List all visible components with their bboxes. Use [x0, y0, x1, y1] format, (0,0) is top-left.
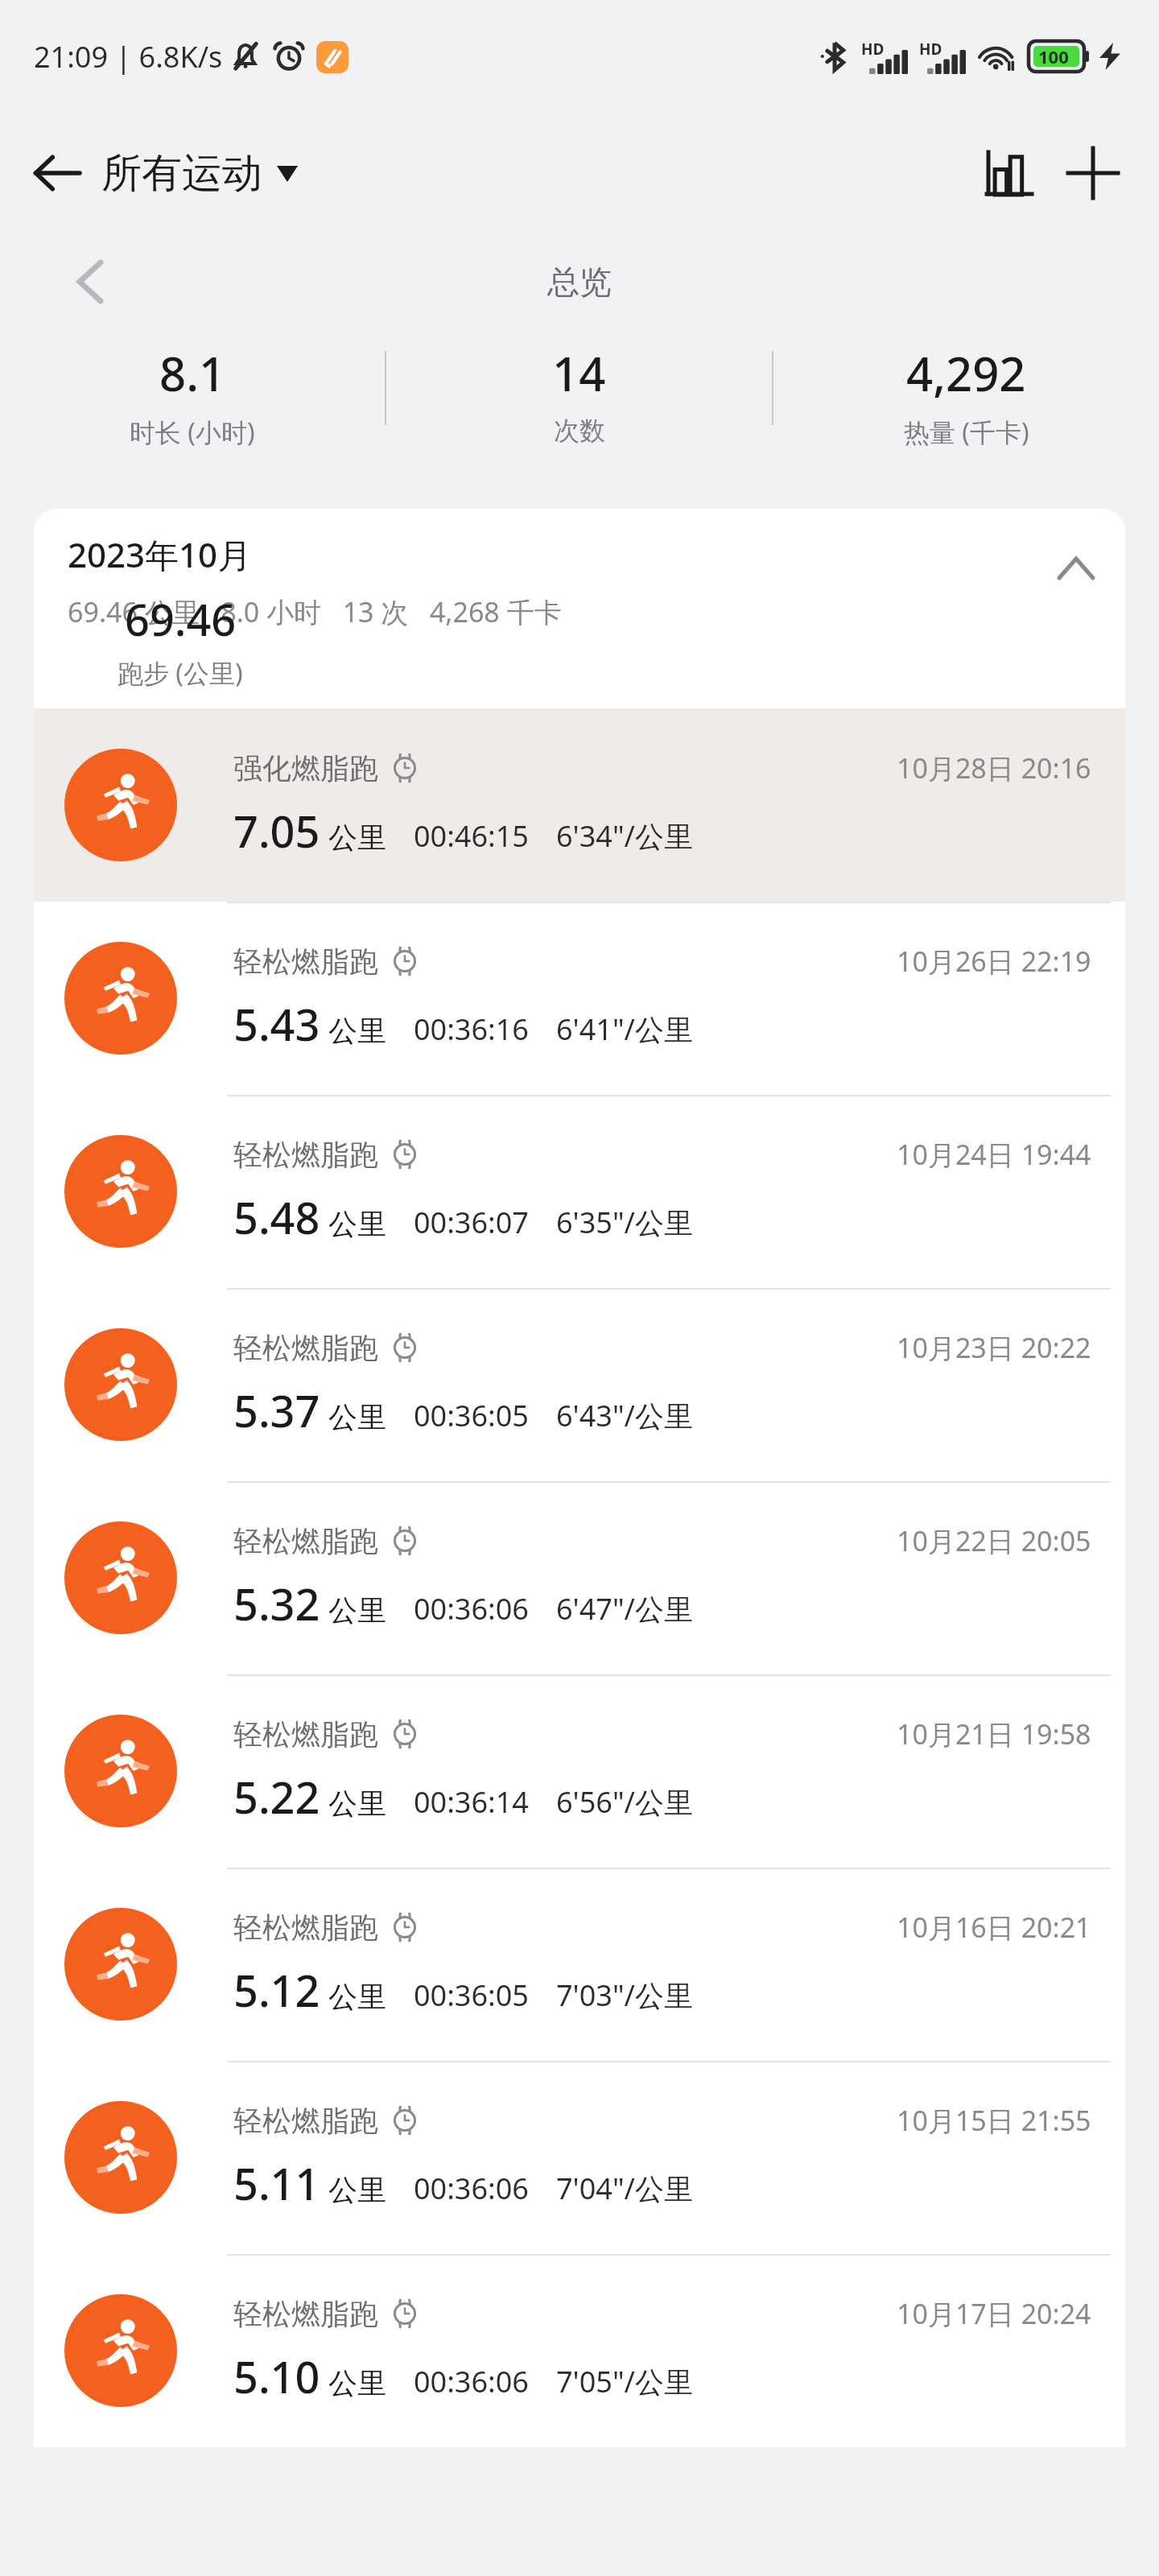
- staticText: 公里: [328, 1399, 386, 1435]
- staticText: 100: [1038, 44, 1069, 68]
- staticText: 7.05: [233, 801, 320, 861]
- staticText: 2023年10月: [68, 531, 252, 577]
- button[interactable]: 强化燃脂跑: [34, 708, 1125, 902]
- staticText: 轻松燃脂跑: [233, 1716, 378, 1752]
- button[interactable]: 2023年10月: [34, 509, 1125, 708]
- staticText: 7'04"/公里: [556, 2169, 693, 2208]
- staticText: 轻松燃脂跑: [233, 2296, 378, 2332]
- button[interactable]: 14: [386, 341, 772, 447]
- staticText: 10月17日 20:24: [897, 2295, 1091, 2332]
- staticText: 00:36:05: [414, 1975, 529, 2015]
- button[interactable]: 轻松燃脂跑: [34, 2254, 1125, 2447]
- button[interactable]: 轻松燃脂跑: [34, 902, 1125, 1095]
- staticText: 10月28日 20:16: [897, 749, 1091, 786]
- staticText: 10月16日 20:21: [897, 1909, 1091, 1946]
- staticText: 时长 (小时): [130, 415, 255, 450]
- button[interactable]: 所有运动: [95, 140, 304, 207]
- staticText: 00:46:15: [414, 816, 529, 856]
- staticText: 轻松燃脂跑: [233, 2103, 378, 2139]
- staticText: 00:36:06: [414, 1589, 529, 1629]
- staticText: 6'35"/公里: [556, 1203, 693, 1242]
- staticText: 轻松燃脂跑: [233, 1330, 378, 1366]
- staticText: 轻松燃脂跑: [233, 943, 378, 980]
- staticText: 公里: [328, 1592, 386, 1629]
- staticText: 10月15日 21:55: [897, 2102, 1091, 2139]
- button[interactable]: 轻松燃脂跑: [34, 1674, 1125, 1868]
- staticText: 10月22日 20:05: [897, 1522, 1091, 1559]
- staticText: 10月21日 19:58: [897, 1715, 1091, 1752]
- button[interactable]: Back: [16, 133, 97, 213]
- staticText: 10月26日 22:19: [897, 943, 1091, 980]
- staticText: 00:36:07: [414, 1203, 529, 1242]
- staticText: 5.22: [233, 1767, 320, 1827]
- staticText: 6'56"/公里: [556, 1782, 693, 1822]
- staticText: 5.12: [233, 1960, 320, 2020]
- staticText: 次数: [554, 415, 605, 447]
- staticText: 公里: [328, 1979, 386, 2015]
- button[interactable]: 轻松燃脂跑: [34, 1481, 1125, 1674]
- staticText: 69.46 公里 8.0 小时 13 次 4,268 千卡: [68, 593, 562, 630]
- staticText: 5.10: [233, 2347, 320, 2406]
- staticText: HD: [919, 39, 942, 60]
- staticText: 轻松燃脂跑: [233, 1909, 378, 1946]
- staticText: 公里: [328, 1206, 386, 1242]
- staticText: 公里: [328, 2172, 386, 2208]
- staticText: 5.37: [233, 1381, 320, 1440]
- staticText: 6'34"/公里: [556, 816, 693, 856]
- staticText: 6'47"/公里: [556, 1589, 693, 1629]
- staticText: 21:09 | 6.8K/s: [34, 37, 223, 76]
- staticText: 公里: [328, 2365, 386, 2401]
- staticText: HD: [861, 39, 885, 60]
- button[interactable]: 8.1: [0, 341, 385, 450]
- staticText: 轻松燃脂跑: [233, 1137, 378, 1173]
- staticText: 所有运动: [101, 148, 262, 199]
- button[interactable]: Previous period: [56, 248, 124, 316]
- staticText: 公里: [328, 1785, 386, 1822]
- staticText: 5.48: [233, 1187, 320, 1247]
- button[interactable]: 轻松燃脂跑: [34, 1868, 1125, 2061]
- staticText: 10月24日 19:44: [897, 1136, 1091, 1173]
- button[interactable]: 轻松燃脂跑: [34, 1095, 1125, 1288]
- staticText: 00:36:06: [414, 2169, 529, 2208]
- staticText: 公里: [328, 819, 386, 856]
- staticText: 5.11: [233, 2153, 320, 2213]
- staticText: 8.1: [159, 341, 226, 405]
- button[interactable]: Statistics: [967, 131, 1051, 215]
- staticText: 强化燃脂跑: [233, 750, 378, 786]
- staticText: 热量 (千卡): [904, 415, 1029, 450]
- staticText: 7'03"/公里: [556, 1975, 693, 2015]
- button[interactable]: Add: [1051, 131, 1135, 215]
- staticText: 10月23日 20:22: [897, 1329, 1091, 1366]
- button[interactable]: 4,292: [773, 341, 1159, 450]
- staticText: 4,292: [906, 341, 1026, 405]
- staticText: 跑步 (公里): [118, 655, 243, 691]
- button[interactable]: 轻松燃脂跑: [34, 2061, 1125, 2254]
- staticText: 轻松燃脂跑: [233, 1523, 378, 1559]
- staticText: 00:36:16: [414, 1009, 529, 1049]
- staticText: 6'43"/公里: [556, 1396, 693, 1435]
- staticText: 00:36:06: [414, 2362, 529, 2401]
- staticText: 69.46: [125, 589, 237, 649]
- staticText: 公里: [328, 1013, 386, 1049]
- staticText: 14: [552, 341, 606, 405]
- staticText: 7'05"/公里: [556, 2362, 693, 2401]
- staticText: 5.43: [233, 994, 320, 1054]
- button[interactable]: 轻松燃脂跑: [34, 1288, 1125, 1481]
- staticText: 6'41"/公里: [556, 1009, 693, 1049]
- staticText: 00:36:05: [414, 1396, 529, 1435]
- staticText: 总览: [547, 262, 612, 302]
- staticText: 00:36:14: [414, 1782, 529, 1822]
- staticText: 5.32: [233, 1574, 320, 1633]
